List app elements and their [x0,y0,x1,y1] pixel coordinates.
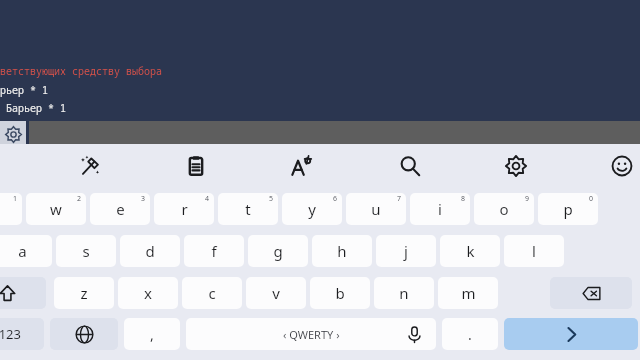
staticText: v [272,283,280,303]
button[interactable]: ?123 [0,318,44,350]
button[interactable]: Voice input [404,324,424,344]
staticText: k [466,241,475,261]
button[interactable]: Search [388,144,432,188]
staticText: b [335,283,345,303]
button[interactable]: p [538,193,598,225]
button[interactable]: ‹ QWERTY › [186,318,436,350]
staticText: n [399,283,409,303]
button[interactable]: Settings [0,121,26,148]
staticText: z [80,283,88,303]
button[interactable]: l [504,235,564,267]
button[interactable]: b [310,277,370,309]
staticText: y [308,199,316,219]
staticText: x [144,283,152,303]
button[interactable]: Magic write [68,144,112,188]
staticText: w [50,199,62,219]
staticText: 9 [525,194,530,204]
staticText: ветствующих средству выбора [0,64,162,78]
button[interactable]: Backspace [550,277,632,309]
staticText: s [82,241,90,261]
button[interactable]: Settings [494,144,538,188]
button[interactable]: d [120,235,180,267]
button[interactable]: h [312,235,372,267]
button[interactable]: f [184,235,244,267]
button[interactable]: Change language [50,318,118,350]
staticText: j [404,241,408,261]
staticText: u [371,199,381,219]
staticText: 5 [269,194,274,204]
staticText: . [468,325,472,344]
button[interactable]: e [90,193,150,225]
button[interactable]: x [118,277,178,309]
button[interactable]: t [218,193,278,225]
button[interactable] [29,121,640,148]
button[interactable]: q [0,193,22,225]
staticText: 7 [397,194,402,204]
button[interactable]: . [442,318,498,350]
staticText: e [116,199,125,219]
staticText: m [461,283,476,303]
button[interactable]: v [246,277,306,309]
button[interactable]: m [438,277,498,309]
staticText: h [337,241,347,261]
staticText: 6 [333,194,338,204]
staticText: c [208,283,216,303]
staticText: 8 [461,194,466,204]
staticText: , [150,325,154,344]
button[interactable]: c [182,277,242,309]
staticText: 4 [205,194,210,204]
staticText: t [245,199,251,219]
button[interactable]: a [0,235,52,267]
staticText: ‹ QWERTY › [283,327,340,342]
staticText: Барьер * 1 [0,101,66,115]
staticText: 2 [77,194,82,204]
staticText: ?123 [0,325,21,343]
button[interactable]: Clipboard [174,144,218,188]
staticText: рьер * 1 [0,83,48,97]
button[interactable]: n [374,277,434,309]
button[interactable]: Translate [280,144,324,188]
staticText: a [18,241,27,261]
button[interactable]: , [124,318,180,350]
button[interactable]: i [410,193,470,225]
button[interactable]: Shift [0,277,46,309]
staticText: g [273,241,283,261]
staticText: p [563,199,573,219]
staticText: l [532,241,536,261]
button[interactable]: r [154,193,214,225]
button[interactable]: s [56,235,116,267]
button[interactable]: k [440,235,500,267]
staticText: r [181,199,188,219]
staticText: f [211,241,217,261]
staticText: i [438,199,442,219]
button[interactable]: y [282,193,342,225]
button[interactable]: Enter [504,318,638,350]
button[interactable]: j [376,235,436,267]
staticText: o [499,199,509,219]
staticText: 0 [589,194,594,204]
button[interactable]: Emoji [600,144,640,188]
button[interactable]: g [248,235,308,267]
button[interactable]: o [474,193,534,225]
staticText: 1 [13,194,18,204]
staticText: 3 [141,194,146,204]
button[interactable]: w [26,193,86,225]
button[interactable]: u [346,193,406,225]
button[interactable]: z [54,277,114,309]
staticText: d [145,241,155,261]
